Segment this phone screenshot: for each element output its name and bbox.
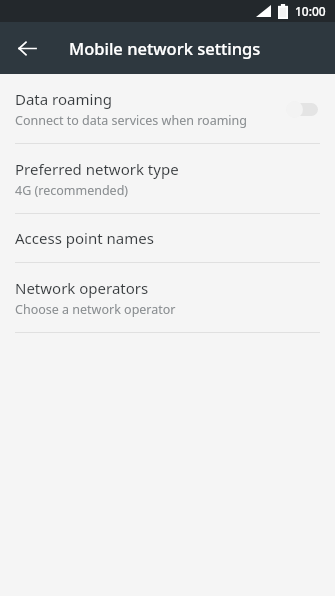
staticText: Mobile network settings xyxy=(69,37,261,59)
staticText: Network operators xyxy=(15,278,149,298)
staticText: Preferred network type xyxy=(15,159,179,179)
staticText: Connect to data services when roaming xyxy=(15,112,247,129)
button[interactable]: Data roaming toggle xyxy=(286,97,320,121)
button[interactable]: Network operators xyxy=(0,263,335,332)
button[interactable]: Back xyxy=(9,30,45,66)
button[interactable]: Data roaming xyxy=(0,74,335,143)
button[interactable]: Access point names xyxy=(0,214,335,262)
staticText: 10:00 xyxy=(295,3,326,19)
staticText: Choose a network operator xyxy=(15,301,176,318)
staticText: 4G (recommended) xyxy=(15,182,129,199)
staticText: Access point names xyxy=(15,228,154,248)
button[interactable]: Preferred network type xyxy=(0,144,335,213)
staticText: Data roaming xyxy=(15,89,112,109)
